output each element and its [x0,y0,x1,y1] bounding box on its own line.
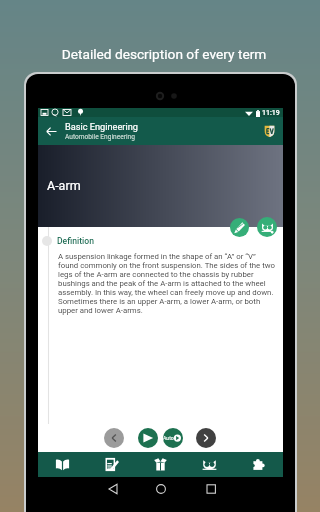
button[interactable]: Dictionary [38,452,87,477]
button[interactable]: Owl [185,452,234,477]
button[interactable]: Next [196,428,216,448]
button[interactable]: EV logo [260,122,278,140]
staticText: Definition [57,236,94,246]
button[interactable]: Previous [104,428,124,448]
button[interactable]: Auto play [163,428,183,448]
button[interactable]: Back [42,122,60,140]
staticText: Detailed description of every term [4,46,320,62]
staticText: A-arm [47,178,81,193]
button[interactable]: Notes [87,452,136,477]
staticText: Auto [163,435,174,441]
staticText: Basic Engineering [65,121,138,132]
button[interactable]: Edit [230,218,249,237]
button[interactable]: Play [138,428,158,448]
staticText: A suspension linkage formed in the shape… [58,252,276,315]
staticText: 11:19 [262,109,280,117]
button[interactable]: Back [38,117,283,145]
button[interactable]: Box [136,452,185,477]
button[interactable]: Puzzle [234,452,283,477]
staticText: Automobile Engineering [65,133,135,141]
button[interactable]: Add to owl [257,217,277,237]
